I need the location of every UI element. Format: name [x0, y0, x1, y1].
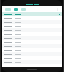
button[interactable]	[2, 12, 62, 16]
button[interactable]	[2, 20, 62, 24]
button[interactable]: Filter chip	[5, 8, 11, 11]
button[interactable]	[2, 44, 62, 48]
button[interactable]	[2, 48, 62, 52]
button[interactable]	[2, 56, 62, 60]
button[interactable]: Filter chip	[14, 8, 18, 11]
button[interactable]	[2, 16, 62, 20]
button[interactable]: Filter chip	[21, 8, 26, 11]
button[interactable]	[2, 24, 62, 28]
button[interactable]	[2, 28, 62, 32]
button[interactable]	[2, 60, 62, 64]
button[interactable]	[2, 52, 62, 56]
button[interactable]	[2, 36, 62, 40]
button[interactable]	[2, 32, 62, 36]
button[interactable]	[2, 40, 62, 44]
button[interactable]: More options	[56, 8, 59, 11]
